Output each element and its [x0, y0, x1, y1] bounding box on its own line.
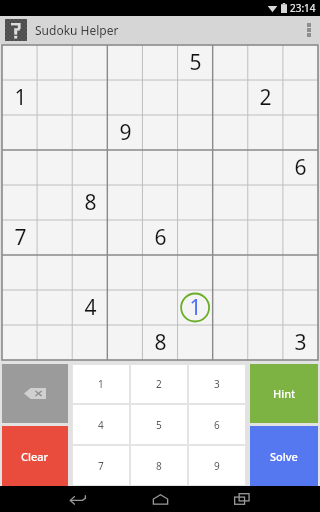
button[interactable]: 1 — [73, 365, 129, 403]
button[interactable] — [143, 150, 178, 185]
button[interactable] — [73, 255, 108, 290]
button[interactable] — [178, 220, 213, 255]
button[interactable] — [248, 150, 283, 185]
button[interactable] — [178, 325, 213, 360]
button[interactable] — [143, 255, 178, 290]
button[interactable]: 2 — [248, 80, 283, 115]
button[interactable] — [2, 325, 38, 360]
button[interactable] — [38, 150, 73, 185]
button[interactable]: 6 — [143, 220, 178, 255]
button[interactable] — [178, 255, 213, 290]
staticText: 7 — [98, 459, 104, 473]
button[interactable] — [73, 115, 108, 150]
button[interactable] — [73, 80, 108, 115]
button[interactable] — [143, 80, 178, 115]
button[interactable] — [213, 325, 248, 360]
button[interactable] — [2, 185, 38, 220]
button[interactable] — [38, 45, 73, 80]
button[interactable]: 1 — [2, 80, 38, 115]
button[interactable] — [2, 290, 38, 325]
button[interactable] — [38, 80, 73, 115]
button[interactable] — [213, 290, 248, 325]
button[interactable] — [213, 255, 248, 290]
button[interactable]: 6 — [189, 405, 245, 444]
button[interactable] — [38, 220, 73, 255]
button[interactable] — [108, 290, 143, 325]
button[interactable] — [248, 325, 283, 360]
button[interactable] — [283, 185, 318, 220]
button[interactable] — [283, 45, 318, 80]
button[interactable]: Recent apps — [225, 486, 259, 512]
button[interactable]: 9 — [108, 115, 143, 150]
button[interactable] — [213, 115, 248, 150]
button[interactable]: 5 — [178, 45, 213, 80]
button[interactable] — [248, 255, 283, 290]
button[interactable] — [213, 150, 248, 185]
button[interactable]: Backspace — [2, 364, 68, 423]
button[interactable] — [2, 150, 38, 185]
button[interactable] — [283, 115, 318, 150]
button[interactable]: 7 — [2, 220, 38, 255]
button[interactable]: Home — [143, 486, 177, 512]
button[interactable] — [73, 325, 108, 360]
button[interactable] — [73, 150, 108, 185]
button[interactable] — [38, 185, 73, 220]
button[interactable]: Back — [61, 486, 95, 512]
button[interactable]: 5 — [2, 45, 318, 360]
button[interactable]: 8 — [143, 325, 178, 360]
button[interactable] — [248, 115, 283, 150]
button[interactable] — [283, 290, 318, 325]
button[interactable] — [108, 220, 143, 255]
button[interactable] — [38, 255, 73, 290]
button[interactable]: 7 — [73, 446, 129, 485]
button[interactable] — [213, 45, 248, 80]
button[interactable] — [38, 115, 73, 150]
button[interactable] — [143, 115, 178, 150]
button[interactable] — [178, 185, 213, 220]
button[interactable] — [38, 325, 73, 360]
button[interactable]: More options — [298, 16, 320, 44]
button[interactable]: 4 — [73, 405, 129, 444]
button[interactable] — [248, 220, 283, 255]
button[interactable] — [2, 45, 38, 80]
button[interactable] — [108, 255, 143, 290]
button[interactable]: 1 — [178, 290, 213, 325]
button[interactable] — [73, 220, 108, 255]
button[interactable] — [2, 255, 38, 290]
button[interactable] — [283, 220, 318, 255]
button[interactable] — [108, 150, 143, 185]
button[interactable] — [108, 45, 143, 80]
button[interactable]: 2 — [131, 365, 187, 403]
button[interactable] — [38, 290, 73, 325]
button[interactable]: Hint — [250, 364, 318, 423]
button[interactable] — [108, 325, 143, 360]
button[interactable] — [73, 45, 108, 80]
button[interactable]: 4 — [73, 290, 108, 325]
button[interactable]: 3 — [283, 325, 318, 360]
button[interactable]: 9 — [189, 446, 245, 485]
button[interactable] — [143, 185, 178, 220]
button[interactable] — [248, 290, 283, 325]
button[interactable] — [248, 45, 283, 80]
button[interactable] — [108, 80, 143, 115]
button[interactable] — [143, 45, 178, 80]
button[interactable]: 6 — [283, 150, 318, 185]
button[interactable] — [143, 290, 178, 325]
button[interactable] — [283, 255, 318, 290]
button[interactable] — [213, 185, 248, 220]
button[interactable] — [178, 150, 213, 185]
button[interactable] — [213, 220, 248, 255]
button[interactable] — [213, 80, 248, 115]
button[interactable] — [248, 185, 283, 220]
button[interactable] — [108, 185, 143, 220]
button[interactable]: 3 — [189, 365, 245, 403]
button[interactable]: 5 — [131, 405, 187, 444]
button[interactable] — [283, 80, 318, 115]
button[interactable] — [178, 115, 213, 150]
button[interactable] — [2, 115, 38, 150]
button[interactable]: Clear — [2, 426, 68, 486]
button[interactable] — [178, 80, 213, 115]
button[interactable]: 8 — [73, 185, 108, 220]
button[interactable]: 8 — [131, 446, 187, 485]
button[interactable]: Solve — [250, 426, 318, 486]
